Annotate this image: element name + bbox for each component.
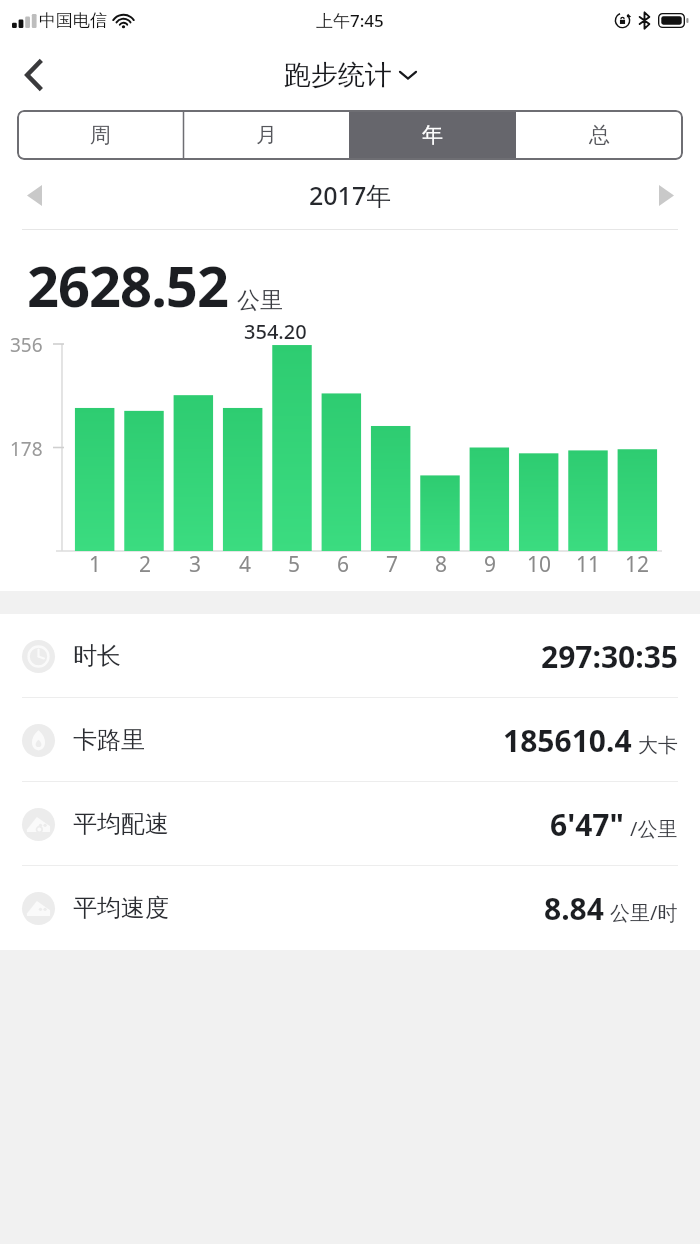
staticText: 11: [576, 550, 601, 579]
button[interactable]: 跑步统计: [284, 58, 416, 92]
staticText: 12: [625, 550, 650, 579]
staticText: 上午7:45: [316, 9, 384, 32]
button[interactable]: 时长: [0, 614, 700, 698]
staticText: 2: [139, 550, 152, 579]
staticText: 10: [527, 550, 552, 579]
staticText: 6'47": [550, 804, 624, 845]
staticText: 平均速度: [73, 893, 169, 923]
staticText: 185610.4: [503, 720, 632, 761]
staticText: 356: [10, 332, 43, 358]
staticText: 178: [10, 436, 43, 462]
staticText: 8: [435, 550, 448, 579]
staticText: 大卡: [638, 733, 678, 758]
staticText: 月: [256, 122, 277, 148]
staticText: 平均配速: [73, 809, 169, 839]
staticText: 6: [337, 550, 350, 579]
staticText: 7: [386, 550, 399, 579]
staticText: 354.20: [244, 318, 307, 345]
button[interactable]: 年: [349, 110, 516, 160]
staticText: 3: [189, 550, 202, 579]
staticText: 4: [239, 550, 252, 579]
staticText: 年: [422, 122, 443, 148]
button[interactable]: 平均配速: [0, 782, 700, 866]
staticText: 297:30:35: [541, 636, 678, 677]
staticText: 公里/时: [610, 899, 678, 926]
staticText: 2017年: [309, 178, 392, 212]
button[interactable]: Back: [10, 52, 56, 98]
button[interactable]: 平均速度: [0, 866, 700, 950]
button[interactable]: 总: [516, 110, 683, 160]
button[interactable]: 卡路里: [0, 698, 700, 782]
staticText: 跑步统计: [284, 58, 392, 92]
button[interactable]: Next year: [640, 169, 692, 221]
staticText: 8.84: [544, 888, 604, 929]
staticText: 5: [288, 550, 301, 579]
staticText: /公里: [630, 815, 678, 842]
button[interactable]: Previous year: [8, 169, 60, 221]
staticText: 周: [90, 122, 111, 148]
staticText: 总: [589, 122, 610, 148]
staticText: 时长: [73, 641, 121, 671]
button[interactable]: 周: [17, 110, 183, 160]
staticText: 2628.52: [27, 247, 228, 323]
staticText: 9: [484, 550, 497, 579]
staticText: 公里: [237, 286, 283, 315]
staticText: 中国电信: [39, 10, 107, 31]
button[interactable]: 月: [183, 110, 349, 160]
staticText: 卡路里: [73, 725, 145, 755]
staticText: 1: [89, 550, 102, 579]
